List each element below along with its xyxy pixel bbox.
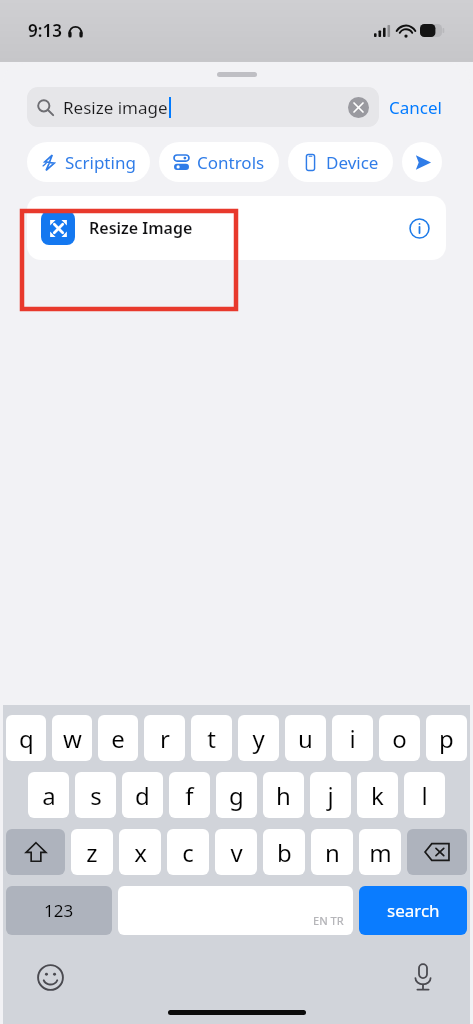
button[interactable]: Resize Image bbox=[27, 196, 446, 260]
button[interactable]: k bbox=[357, 772, 398, 818]
button[interactable]: u bbox=[285, 715, 326, 761]
button[interactable]: f bbox=[169, 772, 210, 818]
button[interactable]: search bbox=[359, 886, 467, 935]
staticText: h bbox=[276, 779, 291, 812]
staticText: k bbox=[371, 779, 384, 812]
button[interactable]: i bbox=[332, 715, 373, 761]
button[interactable]: m bbox=[359, 829, 401, 875]
button[interactable]: n bbox=[311, 829, 353, 875]
button[interactable]: w bbox=[52, 715, 92, 761]
staticText: 9:13 bbox=[28, 19, 62, 42]
staticText: Resize Image bbox=[89, 217, 193, 239]
button[interactable]: o bbox=[379, 715, 420, 761]
button[interactable]: z bbox=[71, 829, 113, 875]
button[interactable]: Resize image bbox=[27, 87, 379, 127]
button[interactable]: 123 bbox=[6, 886, 112, 935]
staticText: u bbox=[298, 722, 313, 755]
button[interactable]: t bbox=[191, 715, 232, 761]
button[interactable]: Scripting bbox=[27, 142, 150, 182]
staticText: Cancel bbox=[389, 96, 442, 119]
button[interactable]: Sharing bbox=[402, 142, 442, 182]
button[interactable]: r bbox=[144, 715, 185, 761]
button[interactable]: Space bbox=[118, 886, 353, 935]
staticText: x bbox=[134, 836, 147, 869]
button[interactable]: Cancel bbox=[379, 88, 452, 127]
staticText: o bbox=[392, 722, 407, 755]
staticText: Device bbox=[326, 151, 379, 174]
button[interactable]: p bbox=[426, 715, 467, 761]
button[interactable]: j bbox=[310, 772, 351, 818]
staticText: l bbox=[421, 779, 428, 812]
button[interactable]: h bbox=[263, 772, 304, 818]
button[interactable]: e bbox=[98, 715, 138, 761]
staticText: n bbox=[325, 836, 340, 869]
staticText: y bbox=[252, 722, 265, 755]
button[interactable]: Shift bbox=[6, 829, 65, 875]
staticText: c bbox=[182, 836, 194, 869]
button[interactable]: x bbox=[119, 829, 161, 875]
staticText: r bbox=[160, 722, 170, 755]
button[interactable]: Controls bbox=[159, 142, 279, 182]
button[interactable]: v bbox=[215, 829, 257, 875]
staticText: d bbox=[135, 779, 150, 812]
button[interactable]: Dictation bbox=[406, 960, 440, 994]
staticText: Scripting bbox=[65, 151, 136, 174]
staticText: j bbox=[327, 779, 334, 812]
button[interactable]: g bbox=[216, 772, 257, 818]
staticText: EN TR bbox=[313, 913, 344, 928]
staticText: g bbox=[229, 779, 244, 812]
button[interactable]: c bbox=[167, 829, 209, 875]
button[interactable]: d bbox=[122, 772, 163, 818]
staticText: i bbox=[349, 722, 356, 755]
staticText: m bbox=[369, 836, 392, 869]
staticText: p bbox=[439, 722, 454, 755]
staticText: w bbox=[63, 722, 82, 755]
button[interactable]: y bbox=[238, 715, 279, 761]
staticText: Controls bbox=[197, 151, 265, 174]
staticText: search bbox=[387, 899, 440, 922]
staticText: v bbox=[230, 836, 243, 869]
button[interactable]: Device bbox=[288, 142, 393, 182]
staticText: e bbox=[111, 722, 125, 755]
staticText: t bbox=[207, 722, 216, 755]
staticText: 123 bbox=[44, 899, 74, 922]
staticText: a bbox=[42, 779, 56, 812]
button[interactable]: a bbox=[28, 772, 69, 818]
staticText: s bbox=[90, 779, 102, 812]
button[interactable]: l bbox=[404, 772, 445, 818]
button[interactable]: b bbox=[263, 829, 305, 875]
button[interactable]: q bbox=[6, 715, 46, 761]
button[interactable]: Backspace bbox=[407, 829, 467, 875]
staticText: Resize image bbox=[63, 96, 168, 119]
staticText: z bbox=[86, 836, 98, 869]
button[interactable]: Emoji bbox=[33, 960, 67, 994]
button[interactable]: Clear text bbox=[348, 97, 369, 118]
staticText: f bbox=[185, 779, 194, 812]
staticText: q bbox=[19, 722, 34, 755]
button[interactable]: More info bbox=[406, 215, 432, 241]
staticText: b bbox=[277, 836, 292, 869]
button[interactable]: s bbox=[75, 772, 116, 818]
